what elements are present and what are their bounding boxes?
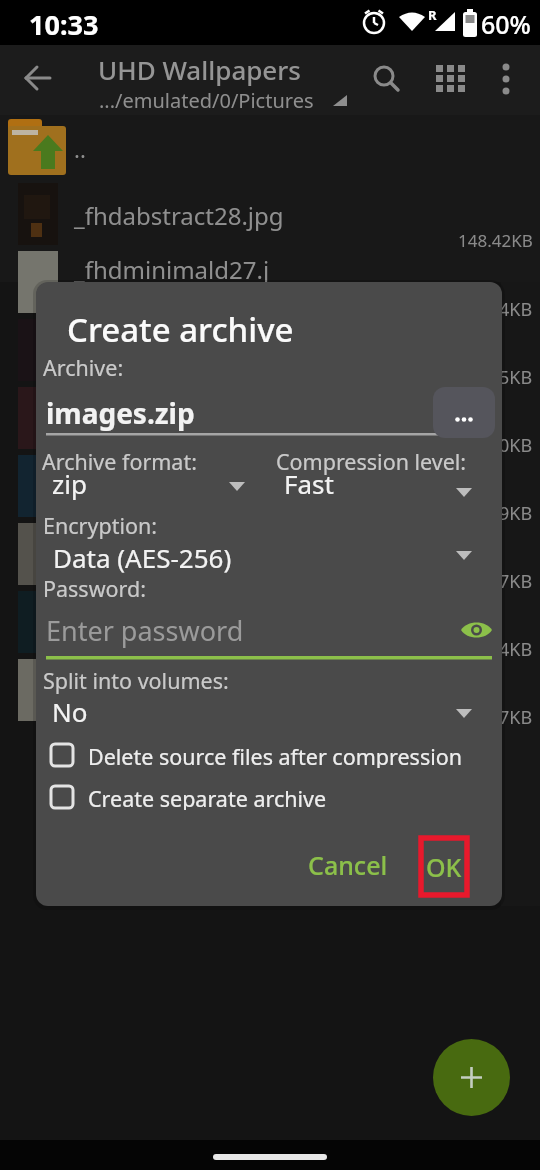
- staticText: 148.42KB: [458, 229, 533, 251]
- staticText: 0KB: [499, 433, 533, 455]
- staticText: Compression level:: [276, 447, 467, 476]
- button[interactable]: [498, 62, 514, 96]
- staticText: 10:33: [29, 6, 99, 43]
- staticText: 7KB: [499, 705, 533, 727]
- staticText: 5KB: [499, 365, 533, 387]
- staticText: 7KB: [499, 569, 533, 591]
- staticText: .../emulated/0/Pictures: [99, 87, 314, 114]
- button[interactable]: [461, 618, 492, 642]
- staticText: UHD Wallpapers: [98, 52, 301, 87]
- staticText: R: [428, 6, 437, 24]
- staticText: OK: [426, 850, 462, 884]
- staticText: Enter password: [46, 612, 244, 649]
- staticText: Delete source files after compression: [88, 742, 463, 768]
- staticText: images.zip: [46, 394, 195, 432]
- staticText: 4KB: [499, 297, 533, 319]
- staticText: Archive format:: [42, 447, 197, 476]
- staticText: Password:: [43, 574, 147, 603]
- staticText: Encryption:: [43, 511, 157, 540]
- staticText: ..: [74, 134, 86, 164]
- button[interactable]: Create separate archive: [50, 784, 327, 810]
- staticText: Archive:: [43, 353, 124, 382]
- staticText: Create archive: [67, 307, 294, 352]
- staticText: Create separate archive: [88, 784, 327, 810]
- button[interactable]: Cancel: [296, 840, 400, 890]
- button[interactable]: [436, 65, 466, 93]
- staticText: Split into volumes:: [43, 666, 229, 695]
- button[interactable]: [24, 64, 52, 92]
- staticText: Fast: [284, 466, 334, 501]
- button[interactable]: [433, 1039, 510, 1116]
- staticText: Cancel: [308, 848, 388, 882]
- staticText: 4KB: [499, 637, 533, 659]
- button[interactable]: Delete source files after compression: [50, 742, 463, 768]
- staticText: _fhdminimald27.j: [74, 253, 270, 286]
- button[interactable]: OK: [421, 838, 467, 895]
- staticText: zip: [52, 466, 87, 501]
- staticText: _fhdabstract28.jpg: [74, 199, 284, 232]
- staticText: 60%: [481, 7, 531, 41]
- staticText: Data (AES-256): [53, 540, 232, 575]
- staticText: 9KB: [499, 501, 533, 523]
- button[interactable]: [373, 65, 399, 91]
- staticText: No: [52, 694, 88, 729]
- button[interactable]: [433, 387, 495, 438]
